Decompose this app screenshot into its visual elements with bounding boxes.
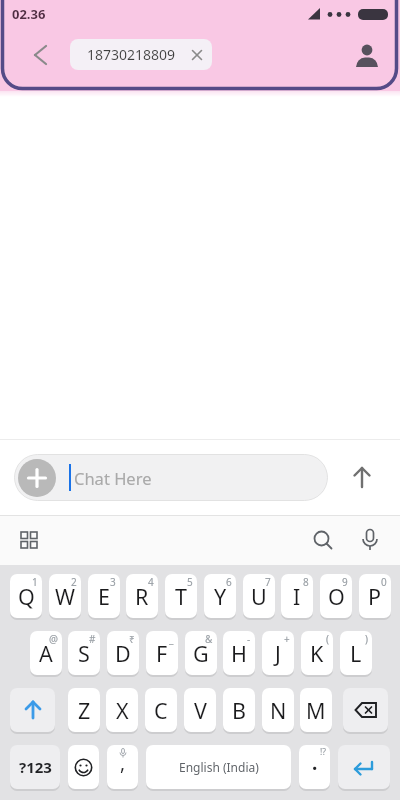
button[interactable] (343, 688, 388, 732)
staticText: F (156, 639, 168, 668)
staticText: ₹ (129, 632, 135, 646)
staticText: D (115, 639, 131, 668)
staticText: M (306, 696, 326, 725)
button[interactable] (359, 528, 381, 552)
staticText: U (251, 582, 267, 611)
button[interactable] (10, 688, 55, 732)
staticText: 7 (265, 575, 271, 589)
staticText: Z (78, 696, 91, 725)
staticText: 2 (71, 575, 77, 589)
staticText: - (247, 632, 251, 646)
staticText: G (193, 639, 209, 668)
staticText: A (39, 639, 53, 668)
staticText: !? (320, 746, 326, 758)
staticText: 8 (303, 575, 309, 589)
button[interactable]: G (185, 631, 217, 675)
button[interactable] (68, 745, 99, 789)
staticText: English (India) (179, 759, 259, 775)
button[interactable]: Z (68, 688, 100, 732)
staticText: Q (18, 582, 35, 611)
staticText: ) (365, 632, 368, 646)
button[interactable] (312, 529, 334, 551)
staticText: ( (326, 632, 329, 646)
staticText: _ (169, 632, 174, 646)
staticText: 6 (226, 575, 232, 589)
staticText: 18730218809 (87, 45, 176, 64)
button[interactable]: , (107, 745, 138, 789)
button[interactable] (18, 459, 56, 497)
button[interactable]: S (68, 631, 100, 675)
button[interactable]: J (262, 631, 294, 675)
staticText: C (154, 696, 168, 725)
staticText: , (120, 750, 126, 776)
button[interactable]: C (145, 688, 177, 732)
staticText: 0 (381, 575, 387, 589)
button[interactable] (18, 529, 40, 551)
staticText: P (368, 582, 382, 611)
staticText: I (293, 582, 301, 611)
button[interactable] (348, 464, 376, 492)
staticText: # (89, 632, 96, 646)
button[interactable]: K (301, 631, 333, 675)
button[interactable] (338, 745, 390, 789)
staticText: V (194, 696, 207, 725)
button[interactable]: V (184, 688, 216, 732)
staticText: J (275, 639, 281, 668)
button[interactable]: L (340, 631, 372, 675)
staticText: Chat Here (74, 467, 152, 489)
staticText: 4 (148, 575, 154, 589)
button[interactable] (28, 42, 54, 68)
staticText: 5 (187, 575, 193, 589)
staticText: @ (49, 632, 58, 646)
button[interactable]: D (107, 631, 139, 675)
button[interactable]: T (165, 574, 197, 618)
staticText: O (328, 582, 345, 611)
staticText: 9 (342, 575, 348, 589)
button[interactable]: X (106, 688, 138, 732)
button[interactable]: E (88, 574, 120, 618)
button[interactable]: N (262, 688, 294, 732)
staticText: . (312, 750, 318, 776)
staticText: R (135, 582, 149, 611)
staticText: & (205, 632, 213, 646)
staticText: E (98, 582, 110, 611)
button[interactable]: Y (204, 574, 236, 618)
button[interactable]: M (300, 688, 332, 732)
button[interactable]: R (126, 574, 158, 618)
button[interactable]: A (30, 631, 62, 675)
button[interactable]: Chat Here (14, 454, 328, 501)
button[interactable]: P (359, 574, 391, 618)
staticText: 02.36 (12, 5, 46, 23)
button[interactable]: B (223, 688, 255, 732)
staticText: B (232, 696, 246, 725)
staticText: 1 (32, 575, 38, 589)
button[interactable]: U (243, 574, 275, 618)
staticText: S (78, 639, 90, 668)
button[interactable]: . (299, 745, 330, 789)
staticText: + (284, 632, 290, 646)
staticText: L (350, 639, 362, 668)
button[interactable]: English (India) (146, 745, 291, 789)
button[interactable]: H (223, 631, 255, 675)
button[interactable]: O (320, 574, 352, 618)
button[interactable]: W (49, 574, 81, 618)
button[interactable]: ?123 (10, 745, 60, 789)
staticText: K (310, 639, 324, 668)
button[interactable]: I (281, 574, 313, 618)
staticText: H (231, 639, 247, 668)
staticText: Y (214, 582, 227, 611)
staticText: 3 (110, 575, 116, 589)
staticText: T (175, 582, 187, 611)
staticText: W (55, 582, 75, 611)
staticText: ?123 (19, 757, 52, 777)
staticText: X (116, 696, 129, 725)
staticText: N (270, 696, 287, 725)
button[interactable]: 18730218809 (70, 39, 212, 70)
button[interactable]: F (146, 631, 178, 675)
button[interactable] (354, 42, 380, 67)
button[interactable]: Q (10, 574, 42, 618)
